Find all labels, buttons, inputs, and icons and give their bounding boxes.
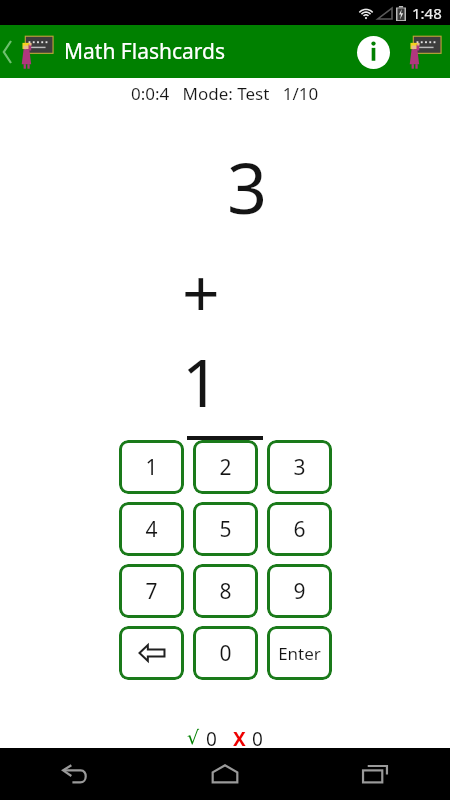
button[interactable]: Enter bbox=[267, 626, 332, 680]
button[interactable]: 6 bbox=[267, 502, 332, 556]
staticText: 4 bbox=[145, 515, 158, 544]
button[interactable]: Home bbox=[150, 748, 300, 800]
button[interactable]: Backspace bbox=[119, 626, 184, 680]
staticText: X bbox=[233, 726, 246, 748]
button[interactable]: 2 bbox=[193, 440, 258, 494]
staticText: 1 bbox=[145, 453, 158, 482]
button[interactable]: 9 bbox=[267, 564, 332, 618]
staticText: 0 bbox=[219, 639, 232, 668]
staticText: Enter bbox=[278, 642, 321, 665]
staticText: 3 bbox=[227, 139, 268, 234]
staticText: 2 bbox=[219, 453, 232, 482]
button[interactable]: 8 bbox=[193, 564, 258, 618]
button[interactable]: 5 bbox=[193, 502, 258, 556]
staticText: 8 bbox=[219, 577, 232, 606]
button[interactable]: Flashcards bbox=[400, 29, 446, 75]
button[interactable]: 0 bbox=[193, 626, 258, 680]
staticText: 1:48 bbox=[412, 3, 442, 23]
staticText: 9 bbox=[293, 577, 306, 606]
button[interactable]: 7 bbox=[119, 564, 184, 618]
button[interactable]: 1 bbox=[119, 440, 184, 494]
button[interactable]: 3 bbox=[267, 440, 332, 494]
button[interactable]: Info bbox=[350, 29, 396, 75]
staticText: Math Flashcards bbox=[64, 37, 226, 66]
other: Up bbox=[2, 41, 14, 63]
staticText: 6 bbox=[293, 515, 306, 544]
button[interactable]: 4 bbox=[119, 502, 184, 556]
staticText: 7 bbox=[145, 577, 158, 606]
staticText: 0 bbox=[206, 726, 217, 748]
staticText: √ bbox=[187, 726, 200, 748]
staticText: 0:0:4 Mode: Test 1/10 bbox=[131, 82, 319, 105]
staticText: 3 bbox=[293, 453, 306, 482]
button[interactable]: Back bbox=[0, 748, 150, 800]
staticText: 0 bbox=[252, 726, 263, 748]
staticText: 5 bbox=[219, 515, 232, 544]
button[interactable]: Recent apps bbox=[300, 748, 450, 800]
staticText: + 1 bbox=[182, 246, 268, 426]
